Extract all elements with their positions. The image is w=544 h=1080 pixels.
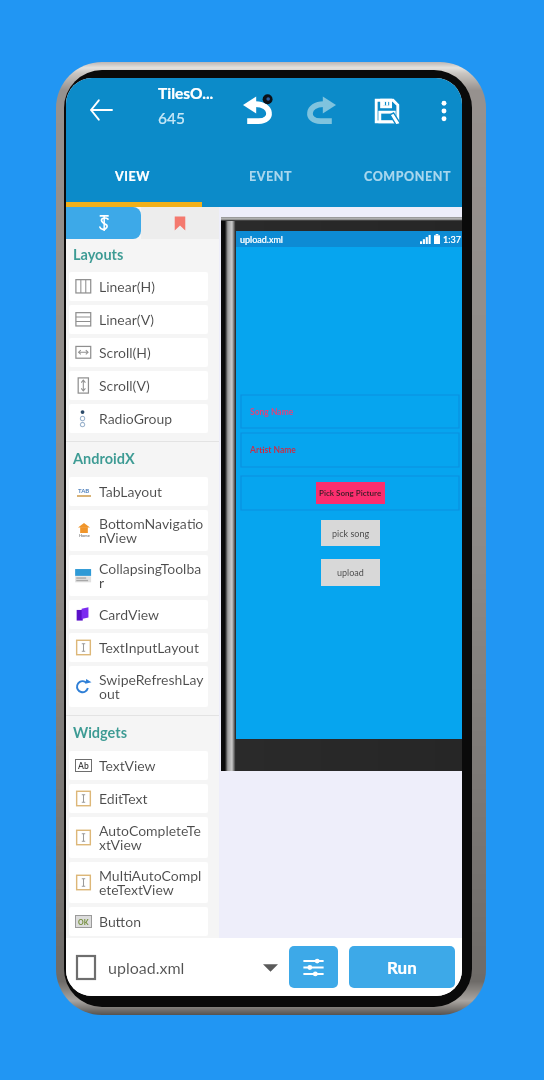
button[interactable]: upload	[321, 559, 380, 586]
staticText: TextView	[99, 757, 206, 774]
staticText: upload.xml	[108, 958, 185, 977]
button[interactable]: Linear(V)	[69, 305, 208, 334]
button[interactable]: Project settings	[289, 946, 338, 988]
button[interactable]: Redo	[296, 87, 346, 135]
button[interactable]: Widgets palette	[66, 207, 141, 239]
staticText: Widgets	[73, 724, 128, 741]
staticText: Scroll(H)	[99, 344, 206, 361]
button[interactable]: More options	[419, 87, 462, 135]
staticText: Scroll(V)	[99, 377, 206, 394]
button[interactable]: Home	[69, 510, 208, 551]
button[interactable]: EditText	[69, 784, 208, 813]
staticText: Pick Song Picture	[319, 488, 382, 498]
button[interactable]: AutoCompleteTextView	[69, 817, 208, 858]
staticText: TAB	[78, 487, 90, 494]
staticText: TilesO...	[158, 84, 214, 103]
staticText: EditText	[99, 790, 206, 807]
staticText: upload.xml	[240, 234, 283, 245]
staticText: MultiAutoCompleteTextView	[99, 867, 206, 898]
staticText: Linear(H)	[99, 278, 206, 295]
staticText: CardView	[99, 606, 206, 623]
button[interactable]: COMPONENT	[342, 150, 462, 202]
button[interactable]: TAB	[69, 477, 208, 506]
staticText: AutoCompleteTextView	[99, 822, 206, 853]
staticText: VIEW	[115, 169, 151, 184]
button[interactable]: TextInputLayout	[69, 633, 208, 662]
button[interactable]: OK	[69, 907, 208, 936]
staticText: COMPONENT	[364, 169, 452, 184]
button[interactable]: Scroll(V)	[69, 371, 208, 400]
button[interactable]: Run	[349, 946, 455, 988]
button[interactable]: CardView	[69, 600, 208, 629]
staticText: Button	[99, 913, 206, 930]
button[interactable]: upload.xml	[77, 956, 289, 979]
staticText: 1:37	[443, 234, 461, 245]
staticText: Layouts	[73, 246, 124, 263]
staticText: TabLayout	[99, 483, 206, 500]
staticText: 645	[158, 109, 185, 128]
staticText: Artist Name	[250, 445, 296, 455]
button[interactable]: Ab	[69, 751, 208, 780]
button[interactable]: pick song	[321, 520, 380, 546]
staticText: pick song	[332, 528, 370, 539]
staticText: BottomNavigationView	[99, 515, 206, 546]
button[interactable]: Pick Song Picture	[316, 482, 385, 504]
button[interactable]: SwipeRefreshLayout	[69, 666, 208, 707]
staticText: Home	[79, 533, 90, 538]
staticText: CollapsingToolbar	[99, 560, 206, 591]
staticText: Linear(V)	[99, 311, 206, 328]
button[interactable]: RadioGroup	[69, 404, 208, 433]
staticText: upload	[337, 567, 364, 578]
staticText: Run	[387, 957, 417, 977]
button[interactable]: EVENT	[205, 150, 337, 202]
button[interactable]: Favourites	[141, 207, 219, 239]
button[interactable]: Back	[77, 86, 125, 134]
button[interactable]: Linear(H)	[69, 272, 208, 301]
staticText: EVENT	[249, 169, 293, 184]
staticText: Song Name	[250, 407, 294, 417]
staticText: OK	[78, 918, 89, 926]
button[interactable]: Scroll(H)	[69, 338, 208, 367]
button[interactable]: VIEW	[67, 150, 199, 202]
staticText: TextInputLayout	[99, 639, 206, 656]
button[interactable]: Undo	[233, 87, 283, 135]
button[interactable]: Save	[362, 87, 412, 135]
staticText: Ab	[78, 761, 89, 771]
staticText: RadioGroup	[99, 410, 206, 427]
staticText: AndroidX	[73, 450, 135, 467]
button[interactable]: CollapsingToolbar	[69, 555, 208, 596]
button[interactable]: MultiAutoCompleteTextView	[69, 862, 208, 903]
staticText: SwipeRefreshLayout	[99, 671, 206, 702]
